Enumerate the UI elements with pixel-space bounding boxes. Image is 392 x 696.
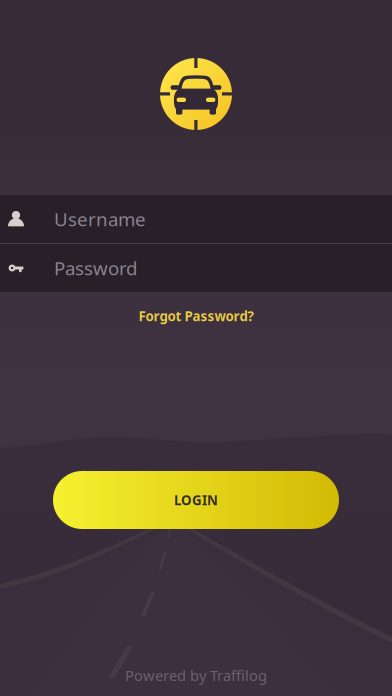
button[interactable]: LOGIN [53,471,339,529]
staticText: Powered by Traffilog [125,665,267,685]
staticText: Forgot Password? [138,307,253,325]
button[interactable]: Forgot Password? [0,304,392,328]
staticText: LOGIN [174,491,218,509]
staticText: Username [54,207,146,231]
staticText: Password [54,256,137,280]
